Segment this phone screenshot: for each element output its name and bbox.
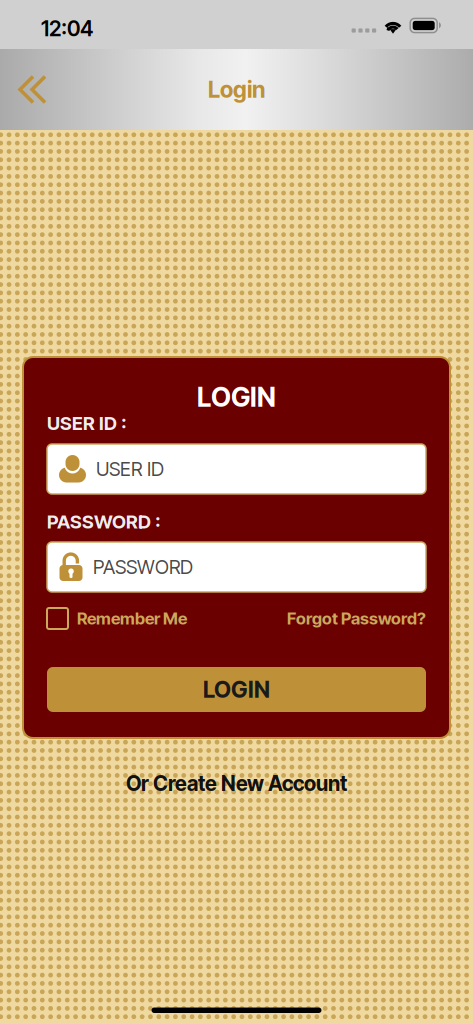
button[interactable]: Or Create New Account [110, 738, 363, 801]
button[interactable]: Back [0, 62, 47, 116]
staticText: PASSWORD : [47, 510, 161, 533]
button[interactable]: LOGIN [47, 667, 426, 712]
staticText: LOGIN [203, 676, 270, 703]
staticText: USER ID [96, 457, 164, 481]
staticText: LOGIN [197, 381, 276, 413]
staticText: 12:04 [41, 16, 93, 41]
staticText: Forgot Password? [287, 608, 426, 629]
staticText: PASSWORD [93, 555, 193, 579]
staticText: Login [208, 76, 265, 103]
staticText: USER ID : [47, 412, 127, 435]
button[interactable]: Forgot Password? [287, 608, 426, 629]
staticText: Remember Me [77, 608, 187, 629]
staticText: Or Create New Account [126, 771, 347, 796]
button[interactable]: Remember Me [47, 608, 187, 629]
